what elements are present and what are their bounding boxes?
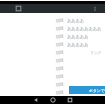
button[interactable]: 項目 bbox=[0, 56, 105, 64]
button[interactable]: 項目 bbox=[0, 24, 105, 32]
button[interactable]: 項目 bbox=[0, 48, 105, 56]
staticText: 項目 bbox=[0, 90, 64, 95]
button[interactable]: 項目 bbox=[0, 32, 105, 40]
button[interactable]: More options bbox=[91, 5, 99, 13]
staticText: 項目 bbox=[0, 18, 64, 23]
button[interactable]: Navigate up bbox=[14, 4, 23, 13]
staticText: 項目 bbox=[0, 82, 64, 87]
button[interactable]: 項目 bbox=[0, 16, 105, 24]
button[interactable]: 項目 bbox=[0, 72, 105, 80]
button[interactable]: リンク bbox=[90, 50, 102, 55]
button[interactable]: ボタンです bbox=[69, 86, 105, 94]
staticText: あああああ bbox=[67, 34, 89, 39]
staticText: 項目 bbox=[0, 50, 64, 55]
staticText: 項目 bbox=[0, 42, 64, 47]
staticText: 項目 bbox=[0, 34, 64, 39]
staticText: 項目 bbox=[0, 66, 64, 71]
button[interactable]: Home bbox=[49, 96, 57, 104]
button[interactable]: Recent apps bbox=[66, 96, 74, 104]
staticText: ボタンです bbox=[89, 88, 105, 93]
staticText: ああああ bbox=[67, 18, 85, 23]
button[interactable]: 項目 bbox=[0, 64, 105, 72]
staticText: 項目 bbox=[0, 74, 64, 79]
staticText: あああああ bbox=[67, 42, 89, 47]
staticText: 項目 bbox=[0, 58, 64, 63]
button[interactable]: 項目 bbox=[0, 88, 105, 96]
button[interactable]: Back bbox=[32, 96, 40, 104]
button[interactable]: 項目 bbox=[0, 40, 105, 48]
staticText: 項目 bbox=[0, 26, 64, 31]
button[interactable]: 項目 bbox=[0, 80, 105, 88]
staticText: ああああああああ bbox=[67, 26, 102, 31]
